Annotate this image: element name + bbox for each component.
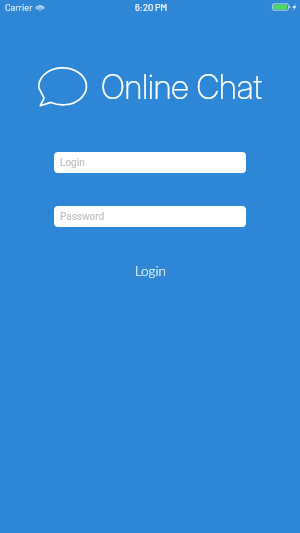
button[interactable]: Login — [121, 257, 180, 285]
other: Wi-Fi signal — [36, 4, 44, 11]
other: Battery charging — [272, 3, 297, 11]
button[interactable]: Login — [54, 152, 246, 173]
staticText: Login — [135, 263, 166, 279]
button[interactable]: Password — [54, 206, 246, 227]
staticText: Carrier — [5, 2, 33, 13]
staticText: Password — [60, 211, 105, 223]
staticText: Online Chat — [101, 67, 263, 107]
staticText: Login — [60, 157, 85, 169]
staticText: 6:20 PM — [135, 2, 168, 13]
